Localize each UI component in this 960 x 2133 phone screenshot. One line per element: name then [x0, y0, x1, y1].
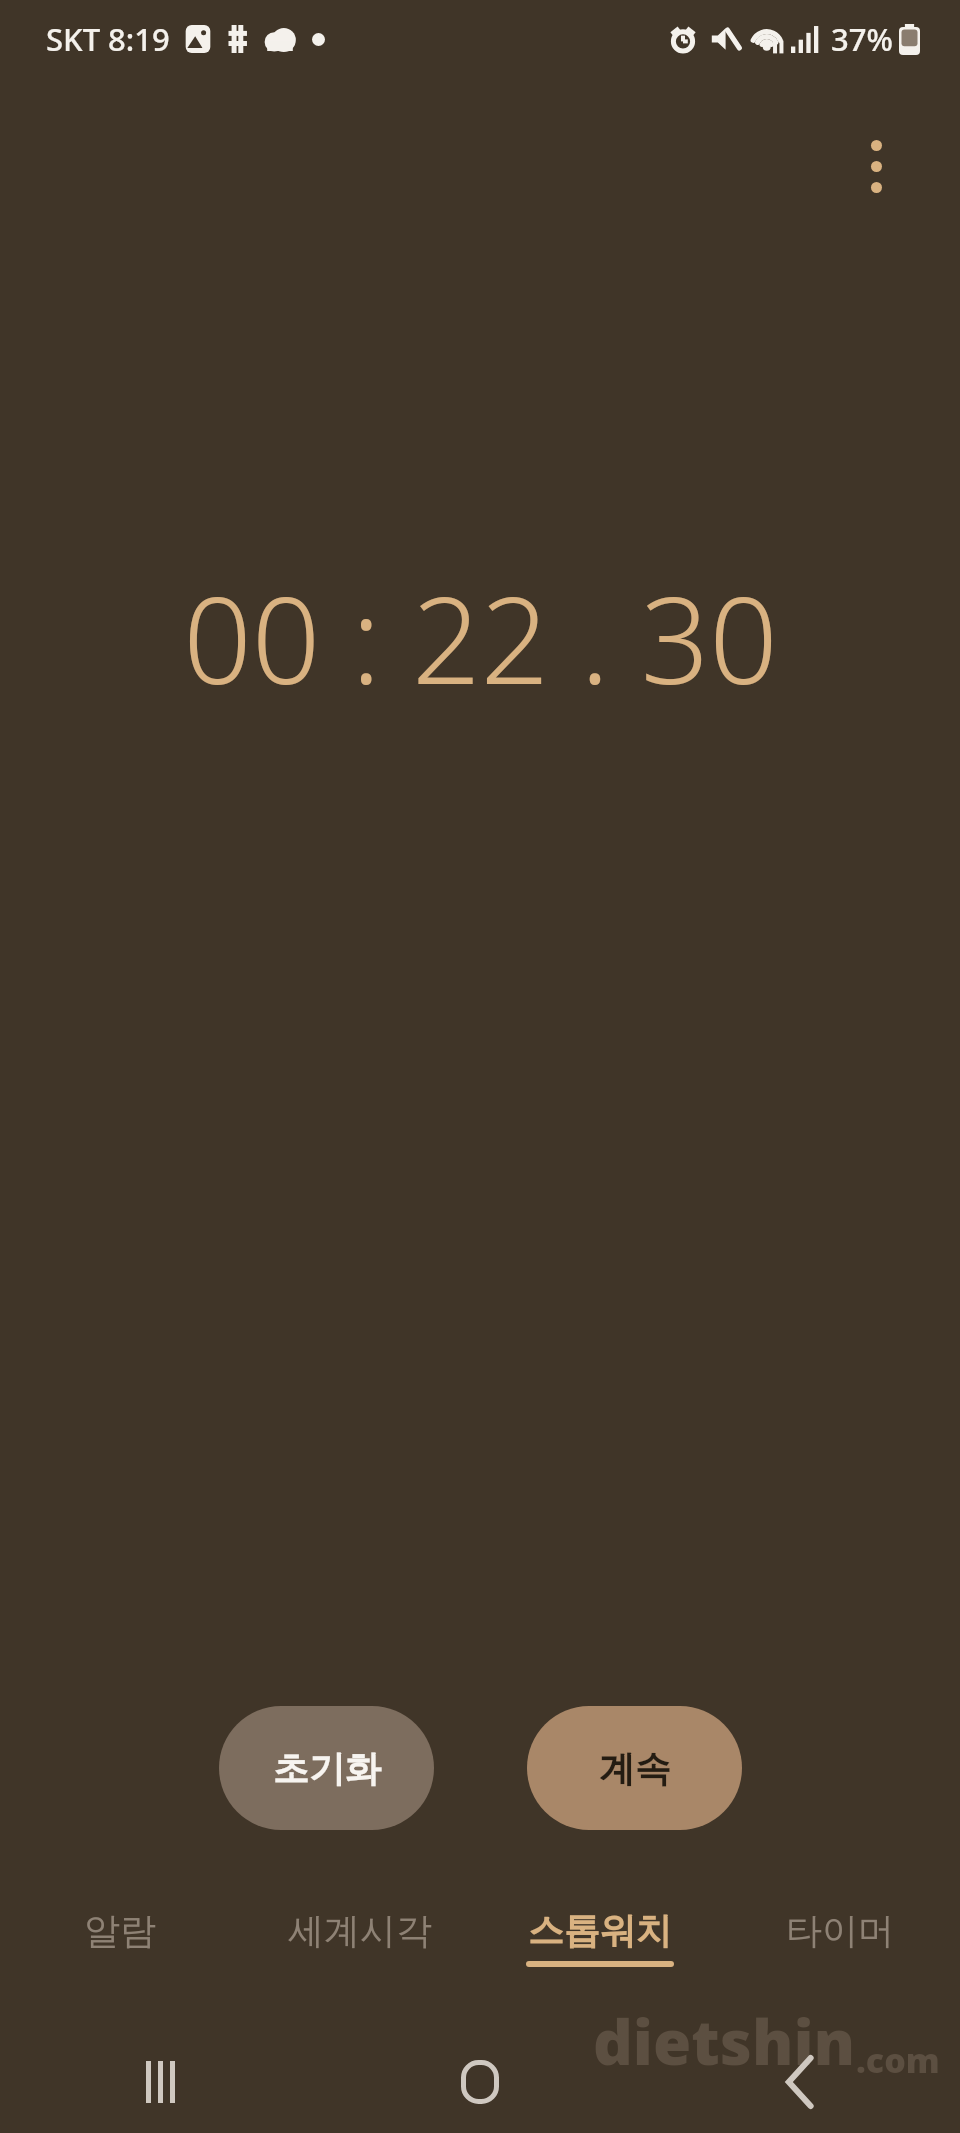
button[interactable]: Recent apps [0, 2030, 320, 2133]
staticText: 초기화 [273, 1746, 381, 1791]
staticText: 알람 [84, 1908, 156, 1953]
button[interactable]: 타이머 [720, 1898, 960, 1998]
staticText: 계속 [599, 1746, 671, 1791]
staticText: dietshin [593, 1999, 856, 2083]
button[interactable]: Home [320, 2030, 640, 2133]
button[interactable]: 알람 [0, 1898, 240, 1998]
button[interactable]: 세계시각 [240, 1898, 480, 1998]
staticText: 00 : 22 . 30 [183, 556, 778, 719]
staticText: .com [856, 2037, 940, 2083]
staticText: 스톱워치 [528, 1908, 672, 1953]
staticText: 타이머 [786, 1908, 894, 1953]
button[interactable]: 스톱워치 [480, 1898, 720, 1998]
button[interactable]: 계속 [527, 1706, 742, 1830]
button[interactable]: Back [640, 2030, 960, 2133]
staticText: SKT 8:19 [46, 18, 170, 60]
staticText: 세계시각 [288, 1908, 432, 1953]
staticText: 37% [831, 18, 893, 60]
button[interactable]: 초기화 [219, 1706, 434, 1830]
button[interactable]: More options [836, 126, 916, 206]
